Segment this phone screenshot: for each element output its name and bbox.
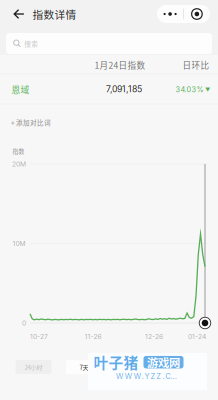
staticText: 1月24日指数 [94, 59, 145, 71]
button[interactable]: 7天 [66, 360, 102, 374]
staticText: 游戏网 [147, 354, 180, 370]
button[interactable]: 搜索 [6, 33, 212, 54]
staticText: 01-24 [188, 332, 206, 341]
staticText: 10M [12, 239, 25, 248]
staticText: 12-26 [145, 332, 163, 341]
staticText: 20M [12, 160, 26, 168]
button[interactable]: 24小时 [15, 360, 51, 374]
button[interactable]: + 添加对比词 [0, 110, 218, 134]
staticText: 0 [22, 319, 26, 327]
button[interactable]: Close mini program [184, 5, 210, 23]
staticText: ▼ [205, 86, 210, 93]
staticText: 11-26 [84, 332, 101, 341]
staticText: 日环比 [182, 59, 209, 71]
staticText: 7,091,185 [106, 84, 142, 94]
staticText: 恩域 [11, 83, 29, 96]
staticText: 34.03% [175, 85, 203, 94]
staticText: 指数 [12, 147, 24, 155]
staticText: 叶子猪 [93, 352, 138, 373]
staticText: 7天 [79, 363, 88, 371]
button[interactable]: More options [157, 5, 183, 23]
staticText: + 添加对比词 [11, 118, 51, 127]
staticText: WWW.YZZ.CN [116, 372, 177, 381]
staticText: 指数详情 [32, 6, 76, 22]
button[interactable]: 指数详情 [3, 0, 86, 28]
staticText: 24小时 [24, 363, 42, 371]
staticText: 搜索 [24, 39, 38, 48]
staticText: 10-27 [30, 332, 48, 341]
